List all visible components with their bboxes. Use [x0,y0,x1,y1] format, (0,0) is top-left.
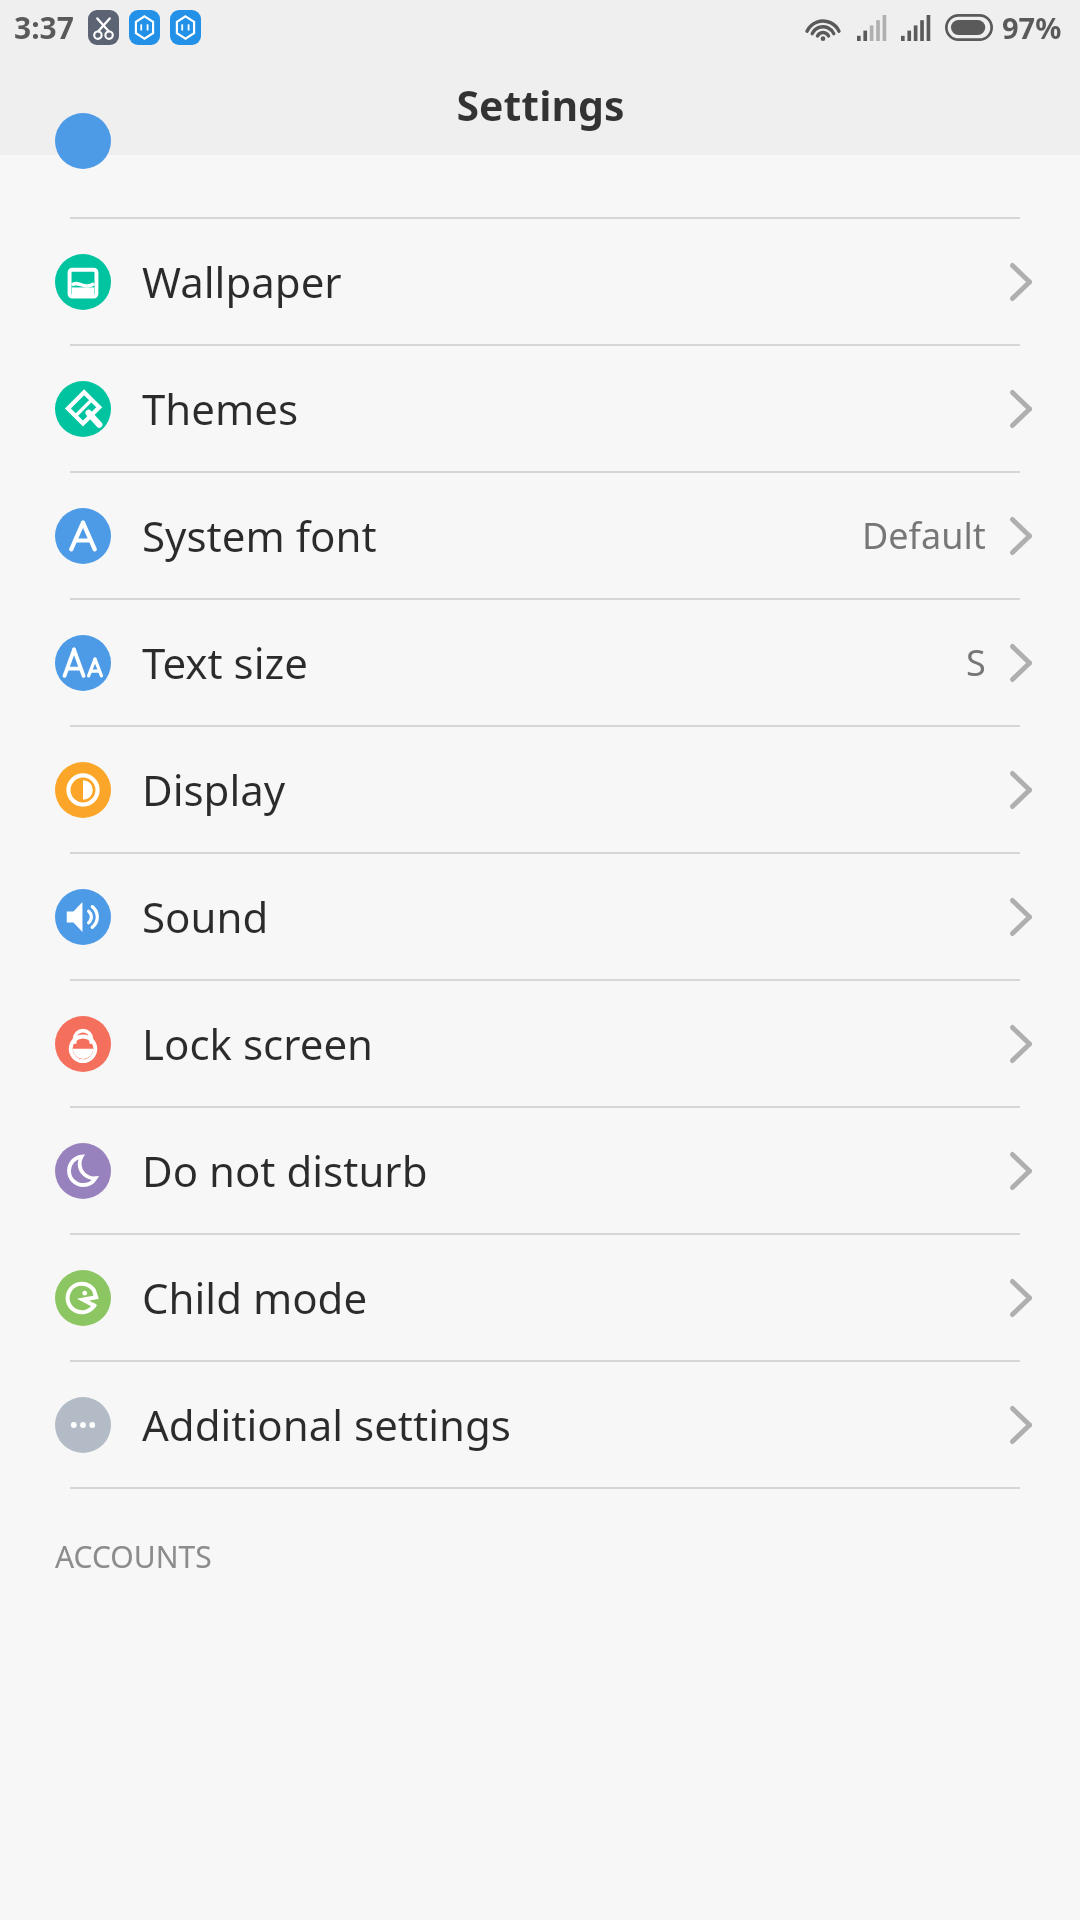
staticText: Themes [142,380,299,437]
button[interactable]: Text size [0,600,1080,725]
other: Open Display [1010,771,1032,809]
other: Open Sound [1010,898,1032,936]
other: Open Wallpaper [1010,263,1032,301]
staticText: Do not disturb [142,1142,428,1199]
staticText: Settings [456,77,625,133]
staticText: S [966,638,986,687]
button[interactable]: Display [0,727,1080,852]
staticText: 97% [1002,8,1062,47]
button[interactable]: Wallpaper [0,219,1080,344]
button[interactable]: Child mode [0,1235,1080,1360]
other: Open System font [1010,517,1032,555]
button[interactable]: System font [0,473,1080,598]
staticText: Child mode [142,1269,368,1326]
staticText: Lock screen [142,1015,374,1072]
staticText: ACCOUNTS [55,1536,212,1577]
other: Open Do not disturb [1010,1152,1032,1190]
button[interactable]: Sound [0,854,1080,979]
button[interactable]: Do not disturb [0,1108,1080,1233]
staticText: Additional settings [142,1396,511,1453]
other: Open Lock screen [1010,1025,1032,1063]
button[interactable]: Themes [0,346,1080,471]
staticText: Default [862,511,986,560]
other: Open Additional settings [1010,1406,1032,1444]
other: Open Child mode [1010,1279,1032,1317]
staticText: Text size [142,634,308,691]
button[interactable]: Lock screen [0,981,1080,1106]
other: Open Themes [1010,390,1032,428]
staticText: 3:37 [14,7,74,48]
staticText: Display [142,761,286,818]
other: Open Text size [1010,644,1032,682]
staticText: Wallpaper [142,253,342,310]
staticText: System font [142,507,377,564]
button[interactable]: Additional settings [0,1362,1080,1487]
staticText: Sound [142,888,269,945]
button[interactable] [0,155,1080,217]
